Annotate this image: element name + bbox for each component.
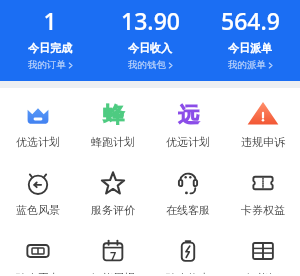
staticText: 564.9 [221, 5, 280, 36]
staticText: 今日完成 [28, 41, 72, 55]
button[interactable]: 智能柜 [225, 236, 300, 276]
staticText: 13.90 [121, 5, 180, 36]
staticText: 违规申诉 [241, 135, 285, 149]
staticText: 智能周报 [91, 271, 135, 274]
other: 优选计划 [25, 102, 51, 128]
other: 蓝色风景 [25, 170, 51, 196]
staticText: 卡券权益 [241, 203, 285, 217]
staticText: 优选计划 [16, 135, 60, 149]
staticText: 我的订单 [28, 59, 66, 71]
other: 骑士王卡 [25, 238, 51, 264]
staticText: 今日派单 [228, 41, 272, 55]
staticText: 蓝色风景 [16, 203, 60, 217]
staticText: 骑士换电 [166, 271, 210, 274]
other: 智能周报 [100, 238, 126, 264]
button[interactable]: 在线客服 [150, 168, 225, 219]
staticText: 蜂跑计划 [91, 135, 135, 149]
button[interactable]: 远 [150, 100, 225, 151]
button[interactable]: 智能周报 [75, 236, 150, 276]
button[interactable]: 蓝色风景 [0, 168, 75, 219]
staticText: 1 [43, 5, 57, 36]
button[interactable]: 13.90 [100, 0, 200, 81]
other: 服务评价 [100, 170, 126, 196]
other: 违规申诉 [250, 102, 276, 128]
staticText: 今日收入 [128, 41, 172, 55]
button[interactable]: 564.9 [200, 0, 300, 81]
other: 在线客服 [175, 170, 201, 196]
button[interactable]: 骑士王卡 [0, 236, 75, 276]
staticText: 在线客服 [166, 203, 210, 217]
button[interactable]: 服务评价 [75, 168, 150, 219]
staticText: 我的钱包 [128, 59, 166, 71]
button[interactable]: 卡券权益 [225, 168, 300, 219]
button[interactable]: 优选计划 [0, 100, 75, 151]
staticText: 骑士王卡 [16, 271, 60, 274]
staticText: 蜂 [103, 102, 124, 128]
button[interactable]: 1 [0, 0, 100, 81]
other: 卡券权益 [250, 170, 276, 196]
staticText: 智能柜 [246, 271, 279, 274]
staticText: 7 [110, 248, 117, 263]
other: 蜂 [100, 102, 126, 128]
other: 骑士换电 [175, 238, 201, 264]
button[interactable]: 违规申诉 [225, 100, 300, 151]
other: 远 [175, 102, 201, 128]
button[interactable]: 蜂 [75, 100, 150, 151]
staticText: 优远计划 [166, 135, 210, 149]
staticText: 服务评价 [91, 203, 135, 217]
staticText: 我的派单 [228, 59, 266, 71]
other: 智能柜 [250, 238, 276, 264]
button[interactable]: 骑士换电 [150, 236, 225, 276]
staticText: 远 [178, 102, 199, 128]
